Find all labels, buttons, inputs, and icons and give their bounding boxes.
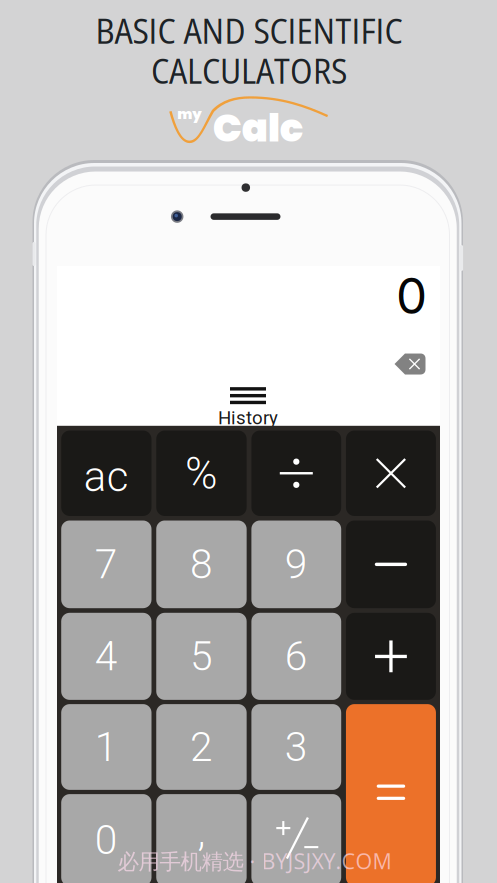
staticText: % bbox=[185, 448, 218, 500]
button[interactable]: Equals bbox=[346, 704, 436, 883]
button[interactable]: Minus bbox=[346, 520, 436, 608]
staticText: 7 bbox=[95, 540, 118, 588]
button[interactable]: % bbox=[156, 430, 247, 516]
staticText: History bbox=[218, 407, 278, 429]
button[interactable]: , bbox=[156, 794, 247, 883]
button[interactable]: 7 bbox=[61, 520, 151, 608]
staticText: 3 bbox=[285, 723, 308, 771]
staticText: Calc bbox=[213, 101, 304, 155]
button[interactable]: 5 bbox=[156, 613, 247, 700]
staticText: 必用手机精选 · BYJSJXY.COM bbox=[117, 846, 391, 876]
staticText: ac bbox=[84, 452, 129, 501]
button[interactable]: 1 bbox=[61, 704, 151, 790]
button[interactable]: Divide bbox=[251, 430, 341, 516]
button[interactable]: 4 bbox=[61, 613, 151, 700]
button[interactable]: 2 bbox=[156, 704, 247, 790]
button[interactable]: 9 bbox=[251, 520, 341, 608]
button[interactable]: 0 bbox=[61, 794, 151, 883]
staticText: 1 bbox=[95, 723, 118, 771]
staticText: BASIC AND SCIENTIFIC bbox=[95, 6, 402, 54]
staticText: my bbox=[177, 104, 201, 124]
button[interactable]: 3 bbox=[251, 704, 341, 790]
button[interactable]: Plus minus bbox=[251, 794, 341, 883]
button[interactable]: Plus bbox=[346, 613, 436, 700]
staticText: 9 bbox=[285, 540, 308, 588]
staticText: 5 bbox=[190, 632, 213, 680]
staticText: CALCULATORS bbox=[151, 46, 347, 94]
staticText: , bbox=[197, 808, 205, 856]
button[interactable]: Delete bbox=[390, 349, 430, 379]
button[interactable]: ac bbox=[61, 430, 151, 516]
staticText: 0 bbox=[396, 266, 427, 326]
staticText: 8 bbox=[190, 540, 213, 588]
staticText: 6 bbox=[285, 632, 308, 680]
staticText: 0 bbox=[95, 816, 118, 864]
button[interactable]: 8 bbox=[156, 520, 247, 608]
button[interactable]: 6 bbox=[251, 613, 341, 700]
button[interactable]: History bbox=[203, 388, 293, 428]
staticText: 4 bbox=[95, 632, 118, 680]
staticText: 2 bbox=[190, 723, 213, 771]
button[interactable]: Multiply bbox=[346, 430, 436, 516]
